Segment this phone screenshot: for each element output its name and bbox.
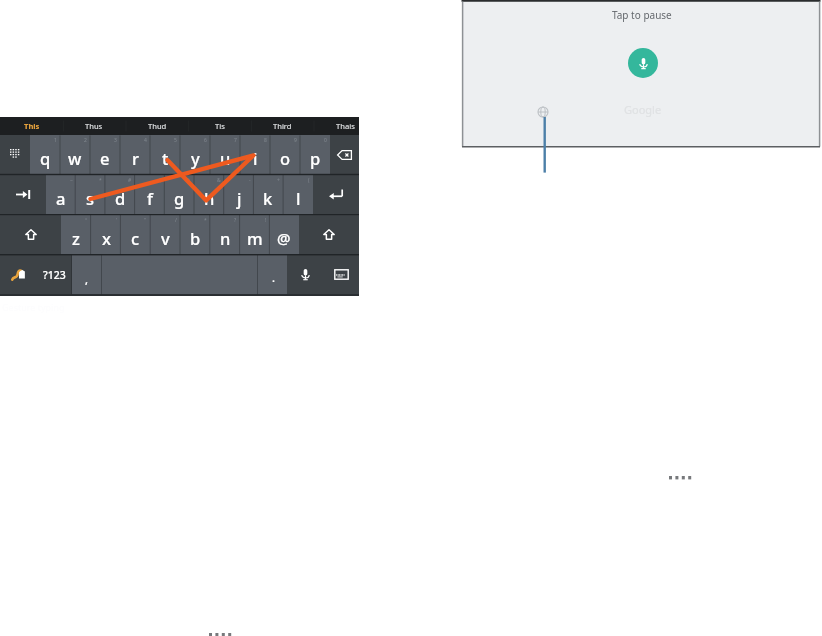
staticText: ? (234, 217, 237, 224)
staticText: 5 (174, 137, 177, 144)
button[interactable]: s (75, 175, 105, 214)
button[interactable]: t (150, 135, 180, 174)
button[interactable]: d (105, 175, 135, 214)
staticText: p (310, 147, 321, 169)
staticText: ( (308, 177, 310, 184)
staticText: ! (265, 217, 267, 224)
staticText: t (162, 147, 169, 169)
staticText: z (72, 227, 80, 249)
button[interactable]: , (72, 255, 102, 294)
button[interactable]: z (61, 215, 91, 254)
staticText: ?123 (43, 268, 66, 282)
button[interactable]: j (224, 175, 254, 214)
button[interactable] (287, 255, 323, 294)
staticText: & (217, 177, 221, 184)
staticText: b (190, 227, 201, 249)
button[interactable]: This (1, 117, 63, 135)
button[interactable]: p (300, 135, 330, 174)
staticText: Third (273, 121, 292, 131)
staticText: This (24, 121, 40, 131)
staticText: Google (624, 102, 662, 117)
staticText: 7 (234, 137, 237, 144)
staticText: 4 (144, 137, 147, 144)
staticText: 3 (114, 137, 117, 144)
staticText: y (191, 147, 200, 169)
staticText: 0 (324, 137, 327, 144)
staticText: @ (277, 228, 291, 248)
button[interactable]: b (180, 215, 210, 254)
button[interactable]: x (91, 215, 121, 254)
button[interactable]: n (210, 215, 240, 254)
staticText: - (249, 177, 251, 184)
staticText: s (86, 187, 95, 209)
button[interactable] (102, 255, 258, 294)
button[interactable]: Voice input (628, 48, 658, 78)
staticText: . (272, 270, 275, 285)
button[interactable]: q (30, 135, 60, 174)
staticText: a (56, 187, 66, 209)
button[interactable] (0, 135, 30, 174)
staticText: o (280, 147, 291, 169)
button[interactable]: Third (251, 117, 313, 135)
button[interactable]: Thus (63, 117, 125, 135)
button[interactable] (299, 215, 359, 254)
staticText: 8 (264, 137, 267, 144)
button[interactable]: Tis (189, 117, 251, 135)
button[interactable]: @ (269, 215, 299, 254)
staticText: n (220, 227, 231, 249)
button[interactable] (0, 215, 61, 254)
staticText: # (128, 177, 132, 184)
staticText: * (99, 177, 102, 184)
staticText: " (144, 217, 147, 224)
button[interactable]: e (90, 135, 120, 174)
button[interactable]: f (135, 175, 165, 214)
button[interactable]: o (270, 135, 300, 174)
button[interactable]: r (120, 135, 150, 174)
staticText: l (296, 187, 301, 209)
staticText: ° (85, 217, 88, 224)
staticText: g (174, 187, 185, 209)
staticText: u (220, 147, 231, 169)
button[interactable] (0, 175, 46, 214)
staticText: c (131, 227, 140, 249)
button[interactable]: l (283, 175, 313, 214)
button[interactable]: h (194, 175, 224, 214)
staticText: w (68, 147, 82, 169)
staticText: Thus (85, 121, 103, 131)
button[interactable]: y (180, 135, 210, 174)
button[interactable]: v (150, 215, 180, 254)
staticText: * (204, 217, 207, 224)
button[interactable]: Thais (314, 117, 376, 135)
staticText: 2 (84, 137, 87, 144)
button[interactable]: . (258, 255, 288, 294)
button[interactable]: c (120, 215, 150, 254)
staticText: j (237, 187, 242, 209)
button[interactable] (0, 255, 37, 294)
staticText: Thud (148, 121, 167, 131)
button[interactable]: g (164, 175, 194, 214)
button[interactable]: i (240, 135, 270, 174)
button[interactable] (313, 175, 359, 214)
staticText: d (115, 187, 126, 209)
staticText: v (161, 227, 170, 249)
button[interactable]: u (210, 135, 240, 174)
staticText: / (175, 217, 177, 224)
button[interactable]: k (253, 175, 283, 214)
button[interactable]: Thud (126, 117, 188, 135)
staticText: Thais (336, 121, 355, 131)
button[interactable]: ?123 (37, 255, 72, 294)
staticText: Tis (215, 121, 225, 131)
button[interactable]: a (46, 175, 76, 214)
staticText: m (247, 227, 263, 249)
staticText: k (263, 187, 273, 209)
button[interactable]: Change language (538, 107, 548, 117)
button[interactable] (330, 135, 359, 174)
staticText: r (132, 147, 139, 169)
staticText: ~ (70, 177, 73, 184)
button[interactable]: m (240, 215, 270, 254)
staticText: $ (159, 177, 162, 184)
staticText: x (102, 227, 111, 249)
button[interactable]: w (60, 135, 90, 174)
button[interactable] (323, 255, 359, 294)
staticText: Tap to pause (612, 8, 672, 22)
